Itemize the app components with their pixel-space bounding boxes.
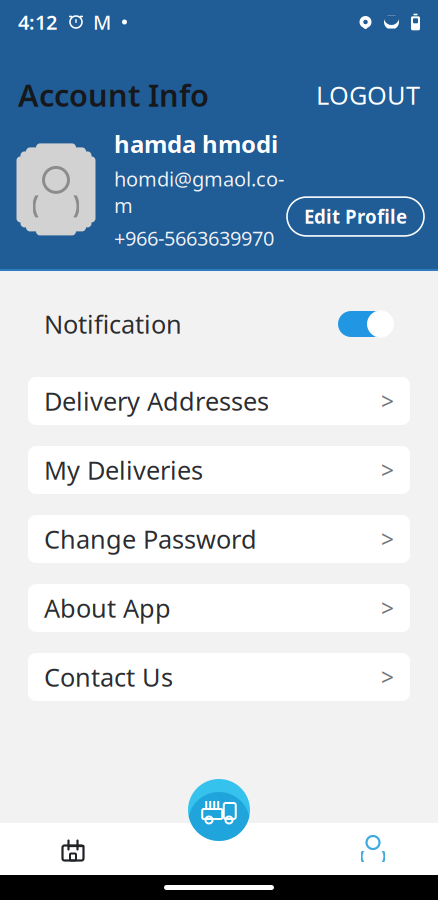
staticText: About App <box>44 591 171 625</box>
staticText: > <box>381 662 394 692</box>
staticText: > <box>381 593 394 623</box>
button[interactable]: Deliveries <box>188 779 250 841</box>
button[interactable]: My Deliveries <box>28 446 410 494</box>
button[interactable]: LOGOUT <box>312 74 424 116</box>
staticText: Account Info <box>18 74 209 115</box>
staticText: homdi@gmaol.com <box>114 165 284 219</box>
staticText: Notification <box>44 307 182 341</box>
staticText: > <box>381 455 394 485</box>
button[interactable]: Delivery Addresses <box>28 377 410 425</box>
button[interactable]: About App <box>28 584 410 632</box>
staticText: LOGOUT <box>316 78 420 112</box>
staticText: +966-5663639970 <box>114 225 274 251</box>
button[interactable]: Change Password <box>28 515 410 563</box>
staticText: My Deliveries <box>44 453 203 487</box>
staticText: > <box>381 386 394 416</box>
button[interactable]: Profile <box>338 823 408 875</box>
staticText: hamda hmodi <box>114 128 278 159</box>
button[interactable]: Notification toggle <box>338 309 394 339</box>
staticText: M <box>93 9 111 35</box>
staticText: Contact Us <box>44 660 173 694</box>
staticText: Delivery Addresses <box>44 384 269 418</box>
staticText: Change Password <box>44 522 257 556</box>
button[interactable]: Notification <box>0 271 438 377</box>
button[interactable]: Edit Profile <box>287 197 424 236</box>
staticText: 4:12 <box>18 9 57 35</box>
button[interactable]: Home <box>38 823 108 875</box>
staticText: > <box>381 524 394 554</box>
button[interactable]: Contact Us <box>28 653 410 701</box>
staticText: Edit Profile <box>304 204 407 229</box>
